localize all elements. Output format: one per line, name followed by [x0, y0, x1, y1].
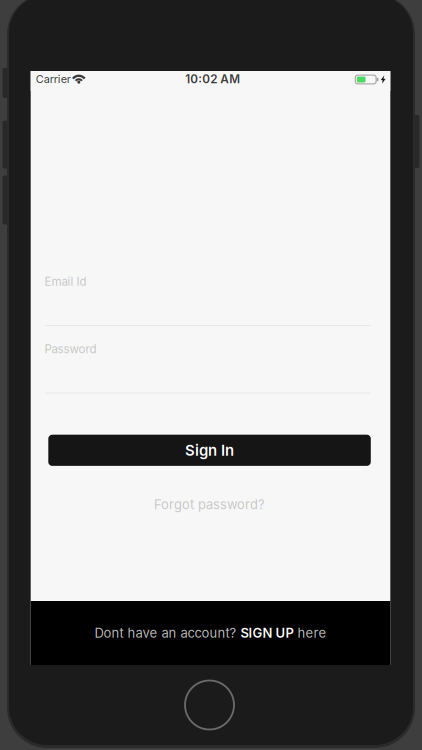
button[interactable]: Password: [45, 340, 371, 394]
staticText: Dont have an account?: [94, 625, 240, 641]
staticText: SIGN UP: [240, 625, 293, 641]
button[interactable]: Sign In: [48, 435, 371, 466]
button[interactable]: Forgot password?: [48, 494, 371, 516]
staticText: Password: [44, 342, 96, 356]
button[interactable]: Dont have an account?: [31, 601, 390, 665]
staticText: Carrier: [36, 72, 71, 85]
staticText: Sign In: [185, 441, 234, 459]
staticText: here: [293, 625, 326, 641]
button[interactable]: Email Id: [45, 273, 371, 327]
staticText: 10:02 AM: [185, 72, 240, 86]
staticText: Email Id: [44, 275, 86, 288]
staticText: Forgot password?: [154, 497, 265, 512]
